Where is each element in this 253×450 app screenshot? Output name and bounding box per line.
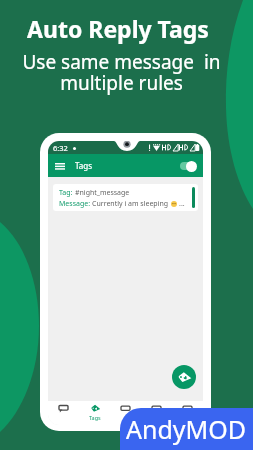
button[interactable]: Rules — [110, 401, 141, 425]
staticText: Tags — [75, 160, 93, 171]
staticText: #night_message — [75, 188, 130, 198]
button[interactable]: AndyMOD — [120, 408, 253, 450]
staticText: ... — [179, 199, 185, 209]
button[interactable]: Settings — [172, 401, 203, 425]
staticText: Use same message in multiple rules — [22, 49, 221, 95]
staticText: Tag: — [59, 188, 75, 198]
staticText: AndyMOD — [126, 412, 247, 446]
staticText: Currently i am sleeping — [92, 199, 169, 209]
button[interactable]: Tags — [79, 401, 110, 425]
button[interactable]: Schedule — [141, 401, 172, 425]
button[interactable]: Open navigation menu — [54, 160, 66, 172]
staticText: Tags — [89, 414, 101, 421]
button[interactable]: Tag: — [53, 184, 198, 211]
staticText: 6:32 — [53, 143, 68, 153]
staticText: Message: — [59, 199, 92, 209]
button[interactable]: Toggle tags — [178, 160, 197, 172]
button[interactable]: Add tag — [172, 365, 196, 389]
button[interactable]: Chats — [48, 401, 79, 425]
staticText: Auto Reply Tags — [27, 13, 209, 44]
